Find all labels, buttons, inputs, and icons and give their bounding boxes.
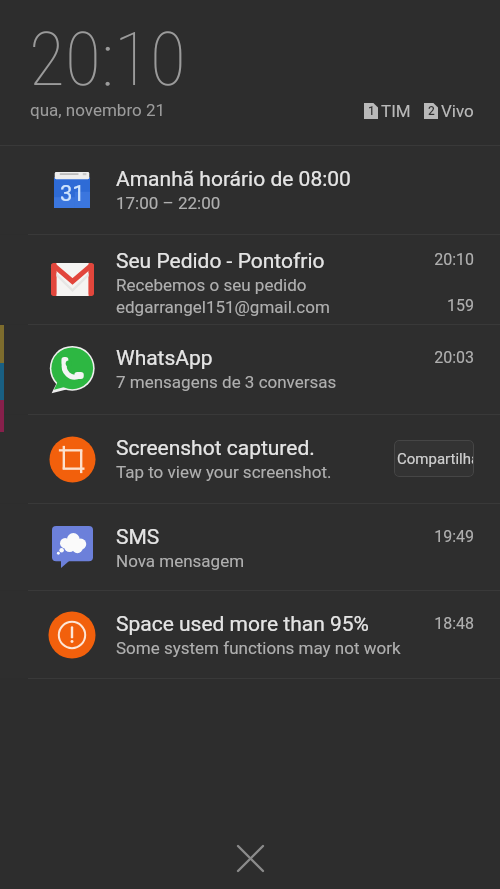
staticText: Vivo xyxy=(441,101,474,121)
staticText: Tap to view your screenshot. xyxy=(116,462,500,482)
staticText: Space used more than 95% xyxy=(116,612,500,637)
staticText: qua, novembro 21 xyxy=(30,100,166,120)
staticText: Amanhã horário de 08:00 xyxy=(116,167,500,192)
staticText: 19:49 xyxy=(414,527,474,546)
staticText: edgarrangel151@gmail.com xyxy=(116,297,500,317)
staticText: 17:00 – 22:00 xyxy=(116,193,500,213)
button[interactable]: 31 xyxy=(0,146,500,234)
staticText: Seu Pedido - Pontofrio xyxy=(116,249,500,274)
staticText: WhatsApp xyxy=(116,346,500,371)
button[interactable]: Compartilhar xyxy=(394,440,474,477)
staticText: 1 xyxy=(368,104,375,118)
staticText: 159 xyxy=(414,296,474,315)
button[interactable]: Seu Pedido - Pontofrio xyxy=(0,235,500,324)
staticText: Compartilhar xyxy=(397,450,474,468)
button[interactable]: Screenshot captured. xyxy=(0,415,500,503)
staticText: 7 mensagens de 3 conversas xyxy=(116,372,500,392)
staticText: TIM xyxy=(381,101,411,121)
button[interactable]: Clear all notifications xyxy=(225,833,275,883)
staticText: 2 xyxy=(428,104,435,118)
staticText: Some system functions may not work xyxy=(116,638,500,658)
button[interactable]: WhatsApp xyxy=(0,325,500,414)
staticText: 20:10 xyxy=(414,250,474,269)
staticText: 20:03 xyxy=(414,348,474,367)
staticText: Screenshot captured. xyxy=(116,436,500,461)
staticText: 18:48 xyxy=(414,614,474,633)
button[interactable]: Space used more than 95% xyxy=(0,591,500,678)
button[interactable]: SMS xyxy=(0,504,500,590)
staticText: SMS xyxy=(116,525,500,550)
staticText: Recebemos o seu pedido xyxy=(116,275,500,295)
staticText: Nova mensagem xyxy=(116,551,500,571)
staticText: 31 xyxy=(60,181,85,207)
